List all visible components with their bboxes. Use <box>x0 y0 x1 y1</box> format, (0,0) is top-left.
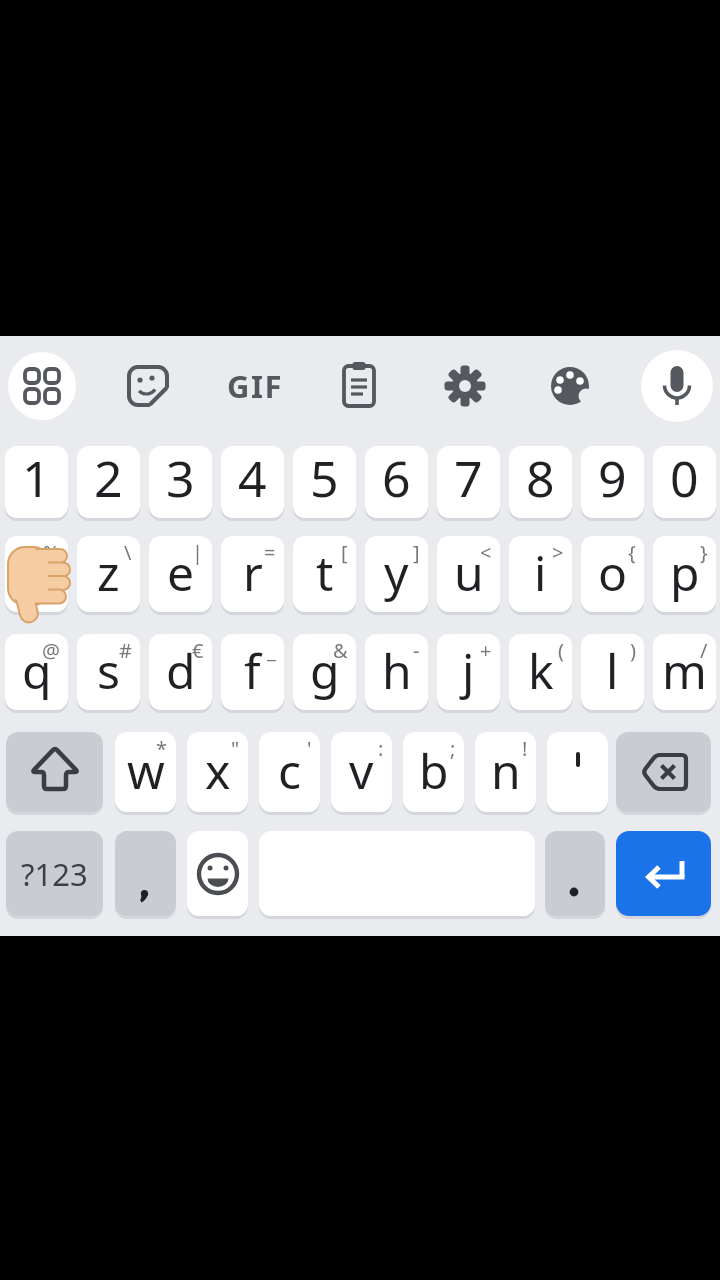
staticText: c <box>278 738 302 803</box>
staticText: \ <box>124 539 132 566</box>
button[interactable]: b <box>403 732 464 812</box>
staticText: ( <box>558 637 564 664</box>
staticText: 7 <box>454 444 483 512</box>
staticText: € <box>192 637 204 664</box>
button[interactable] <box>542 358 598 414</box>
staticText: g <box>310 638 340 703</box>
staticText: r <box>243 540 263 605</box>
staticText: > <box>552 539 564 566</box>
button[interactable]: 0 <box>653 446 716 518</box>
button[interactable] <box>437 358 493 414</box>
button[interactable]: t <box>293 536 356 612</box>
button[interactable] <box>331 358 387 414</box>
button[interactable]: 3 <box>149 446 212 518</box>
button[interactable] <box>616 732 711 812</box>
button[interactable] <box>6 732 103 812</box>
staticText: b <box>419 738 449 803</box>
staticText: z <box>97 540 120 605</box>
button[interactable] <box>616 831 711 916</box>
button[interactable]: j <box>437 634 500 710</box>
button[interactable]: w <box>115 732 176 812</box>
button[interactable] <box>14 358 70 414</box>
button[interactable]: i <box>509 536 572 612</box>
staticText: ?123 <box>21 853 88 895</box>
button[interactable]: 5 <box>293 446 356 518</box>
button[interactable] <box>187 831 248 916</box>
button[interactable] <box>649 358 705 414</box>
staticText: & <box>333 637 348 664</box>
staticText: u <box>454 540 484 605</box>
button[interactable]: 4 <box>221 446 284 518</box>
staticText: d <box>166 638 196 703</box>
button[interactable]: k <box>509 634 572 710</box>
button[interactable]: 6 <box>365 446 428 518</box>
staticText: w <box>127 738 165 803</box>
button[interactable]: e <box>149 536 212 612</box>
button[interactable]: f <box>221 634 284 710</box>
button[interactable]: g <box>293 634 356 710</box>
staticText: ) <box>630 637 636 664</box>
button[interactable]: GIF <box>216 360 294 412</box>
button[interactable]: q <box>5 634 68 710</box>
button[interactable]: m <box>653 634 716 710</box>
button[interactable]: p <box>653 536 716 612</box>
staticText: / <box>700 637 708 664</box>
button[interactable]: v <box>331 732 392 812</box>
staticText: | <box>192 539 204 566</box>
button[interactable] <box>115 831 176 916</box>
button[interactable]: c <box>259 732 320 812</box>
staticText: o <box>598 540 628 605</box>
staticText: s <box>97 638 120 703</box>
staticText: @ <box>42 637 60 664</box>
staticText: < <box>480 539 492 566</box>
staticText: y <box>384 540 409 605</box>
button[interactable] <box>545 831 605 916</box>
staticText: } <box>700 539 708 566</box>
staticText: 6 <box>382 444 411 512</box>
staticText: % <box>43 539 60 566</box>
button[interactable] <box>120 358 176 414</box>
button[interactable]: 8 <box>509 446 572 518</box>
staticText: m <box>662 638 707 703</box>
button[interactable]: 2 <box>77 446 140 518</box>
button[interactable]: d <box>149 634 212 710</box>
button[interactable]: o <box>581 536 644 612</box>
button[interactable]: ?123 <box>6 831 103 916</box>
staticText: : <box>378 735 384 762</box>
staticText: ! <box>522 735 528 762</box>
button[interactable]: n <box>475 732 536 812</box>
staticText: ' <box>307 735 312 762</box>
staticText: f <box>244 638 261 703</box>
staticText: = <box>264 539 276 566</box>
staticText: { <box>628 539 636 566</box>
button[interactable]: 9 <box>581 446 644 518</box>
staticText: j <box>462 638 475 703</box>
staticText: GIF <box>227 365 284 407</box>
staticText: _ <box>267 637 276 664</box>
staticText: i <box>534 540 547 605</box>
staticText: " <box>231 735 240 762</box>
button[interactable]: % <box>5 536 68 612</box>
staticText: 5 <box>310 444 339 512</box>
button[interactable]: h <box>365 634 428 710</box>
button[interactable]: x <box>187 732 248 812</box>
button[interactable]: 1 <box>5 446 68 518</box>
button[interactable]: z <box>77 536 140 612</box>
button[interactable]: y <box>365 536 428 612</box>
button[interactable]: s <box>77 634 140 710</box>
staticText: * <box>156 735 168 762</box>
staticText: + <box>480 637 492 664</box>
button[interactable]: l <box>581 634 644 710</box>
staticText: 1 <box>22 444 51 512</box>
staticText: 8 <box>526 444 555 512</box>
button[interactable]: r <box>221 536 284 612</box>
button[interactable]: u <box>437 536 500 612</box>
staticText: 3 <box>166 444 195 512</box>
staticText: v <box>349 738 374 803</box>
button[interactable]: 7 <box>437 446 500 518</box>
staticText: 2 <box>94 444 123 512</box>
staticText: l <box>606 638 619 703</box>
button[interactable] <box>547 732 608 812</box>
staticText: q <box>22 638 52 703</box>
